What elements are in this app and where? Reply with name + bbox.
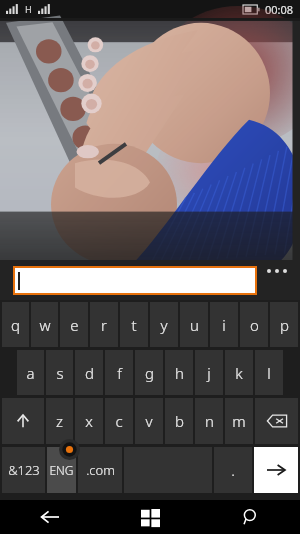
staticText: i — [222, 315, 226, 335]
button[interactable]: y — [150, 302, 178, 347]
button[interactable]: More options — [262, 264, 292, 278]
staticText: g — [145, 363, 154, 383]
staticText: b — [175, 411, 184, 431]
staticText: w — [39, 315, 51, 335]
button[interactable]: s — [46, 350, 73, 395]
staticText: n — [205, 411, 214, 431]
staticText: v — [145, 411, 153, 431]
button[interactable]: . — [214, 447, 252, 493]
button[interactable]: Shift — [2, 398, 44, 444]
button[interactable]: j — [195, 350, 223, 395]
staticText: o — [250, 315, 259, 335]
staticText: .com — [86, 461, 115, 479]
staticText: H — [25, 3, 32, 15]
staticText: a — [26, 363, 35, 383]
staticText: ENG — [49, 462, 74, 478]
button[interactable]: b — [165, 398, 193, 444]
staticText: m — [232, 411, 246, 431]
staticText: j — [207, 363, 211, 383]
button[interactable]: p — [270, 302, 298, 347]
button[interactable]: k — [225, 350, 253, 395]
staticText: h — [175, 363, 184, 383]
button[interactable]: l — [255, 350, 283, 395]
button[interactable]: z — [46, 398, 73, 444]
staticText: l — [267, 363, 271, 383]
button[interactable]: e — [60, 302, 88, 347]
staticText: d — [85, 363, 94, 383]
button[interactable]: .com — [78, 447, 122, 493]
staticText: p — [280, 315, 289, 335]
staticText: u — [190, 315, 199, 335]
staticText: y — [160, 315, 168, 335]
staticText: r — [101, 315, 107, 335]
button[interactable]: Start — [126, 500, 174, 534]
button[interactable]: q — [2, 302, 29, 347]
staticText: q — [11, 315, 20, 335]
staticText: x — [85, 411, 93, 431]
staticText: t — [131, 315, 137, 335]
button[interactable]: Enter — [254, 447, 298, 493]
button[interactable]: h — [165, 350, 193, 395]
button[interactable]: m — [225, 398, 253, 444]
button[interactable]: n — [195, 398, 223, 444]
button[interactable]: g — [135, 350, 163, 395]
staticText: &123 — [8, 461, 40, 479]
button[interactable]: d — [75, 350, 103, 395]
button[interactable]: v — [135, 398, 163, 444]
button[interactable]: w — [31, 302, 58, 347]
button[interactable]: o — [240, 302, 268, 347]
button[interactable]: i — [210, 302, 238, 347]
button[interactable]: Back — [26, 500, 74, 534]
button[interactable]: r — [90, 302, 118, 347]
staticText: k — [235, 363, 243, 383]
button[interactable]: a — [17, 350, 44, 395]
staticText: 00:08 — [265, 2, 294, 17]
staticText: c — [115, 411, 123, 431]
button[interactable] — [13, 266, 257, 295]
button[interactable]: Search — [226, 500, 274, 534]
staticText: f — [117, 363, 122, 383]
button[interactable]: f — [105, 350, 133, 395]
button[interactable]: c — [105, 398, 133, 444]
staticText: s — [56, 363, 64, 383]
button[interactable]: Backspace — [255, 398, 298, 444]
button[interactable]: u — [180, 302, 208, 347]
staticText: . — [231, 460, 235, 480]
button[interactable]: &123 — [2, 447, 45, 493]
button[interactable]: t — [120, 302, 148, 347]
button[interactable]: x — [75, 398, 103, 444]
staticText: z — [56, 411, 63, 431]
button[interactable]: ENG — [47, 447, 76, 493]
staticText: e — [70, 315, 79, 335]
